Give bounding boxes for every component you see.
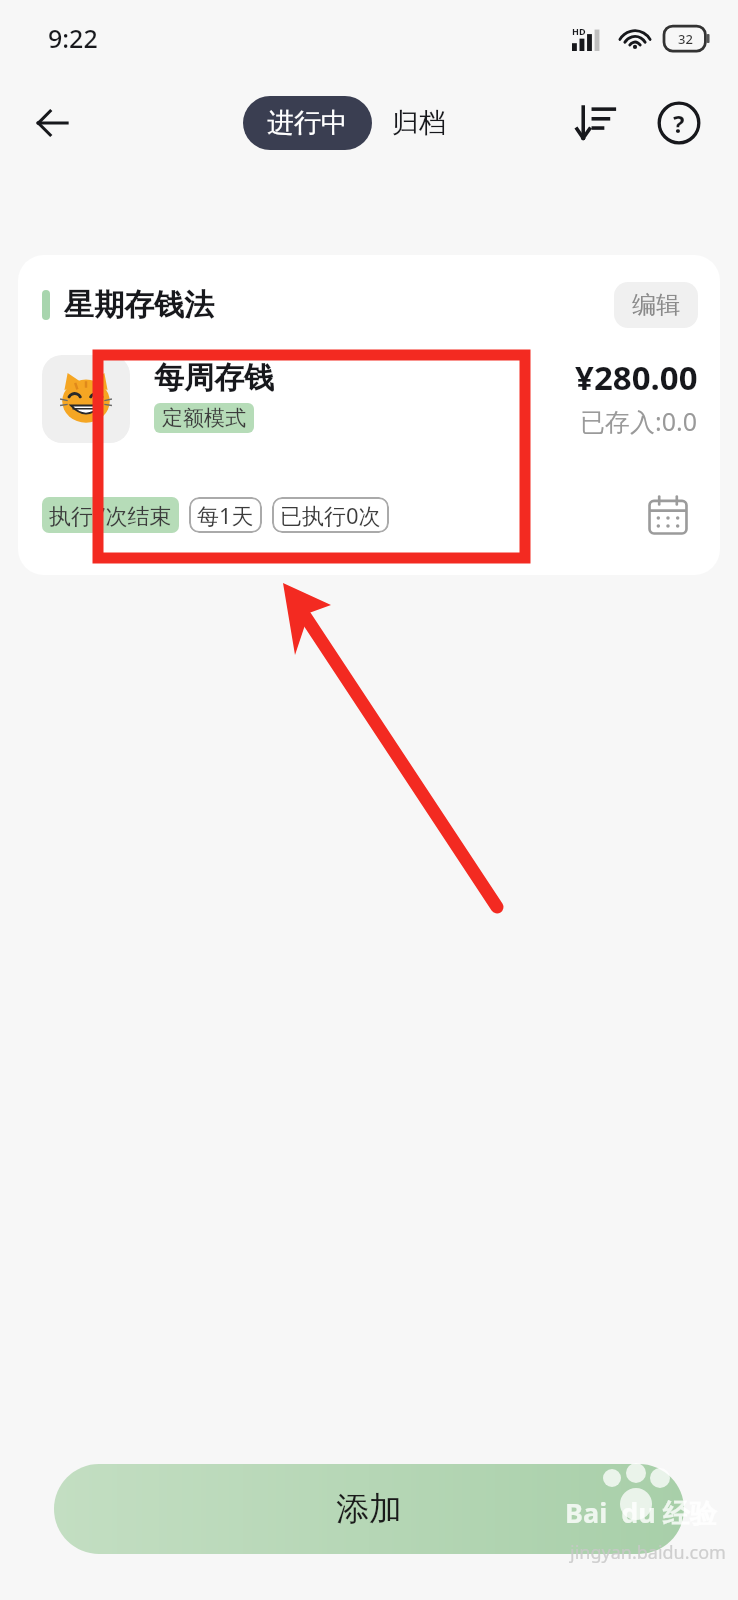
staticText: 每1天 <box>197 500 254 530</box>
staticText: 32 <box>678 30 693 48</box>
button[interactable]: 归档 <box>372 96 466 150</box>
button[interactable]: Back <box>22 93 82 153</box>
button[interactable]: Calendar <box>642 489 694 541</box>
button[interactable]: 添加 <box>54 1464 684 1554</box>
staticText: 执行7次结束 <box>49 500 172 530</box>
staticText: 定额模式 <box>162 405 246 431</box>
staticText: 星期存钱法 <box>64 286 214 324</box>
staticText: Bai du 经验 <box>565 1494 717 1531</box>
staticText: 已执行0次 <box>280 500 381 530</box>
staticText: 每周存钱 <box>154 359 274 397</box>
staticText: 编辑 <box>632 290 680 320</box>
button[interactable]: 星期存钱法 <box>18 255 720 575</box>
staticText: 9:22 <box>48 21 98 55</box>
staticText: 添加 <box>336 1488 402 1530</box>
button[interactable]: 编辑 <box>614 282 698 328</box>
staticText: ¥280.00 <box>575 355 698 400</box>
staticText: 已存入:0.0 <box>580 404 698 438</box>
staticText: ? <box>673 107 685 140</box>
button[interactable]: Help <box>648 92 710 154</box>
staticText: HD <box>572 25 586 37</box>
staticText: 进行中 <box>267 106 348 140</box>
staticText: 归档 <box>392 106 446 140</box>
button[interactable]: Sort <box>564 92 626 154</box>
staticText: jingyan.baidu.com <box>570 1540 726 1565</box>
button[interactable]: 进行中 <box>243 96 372 150</box>
